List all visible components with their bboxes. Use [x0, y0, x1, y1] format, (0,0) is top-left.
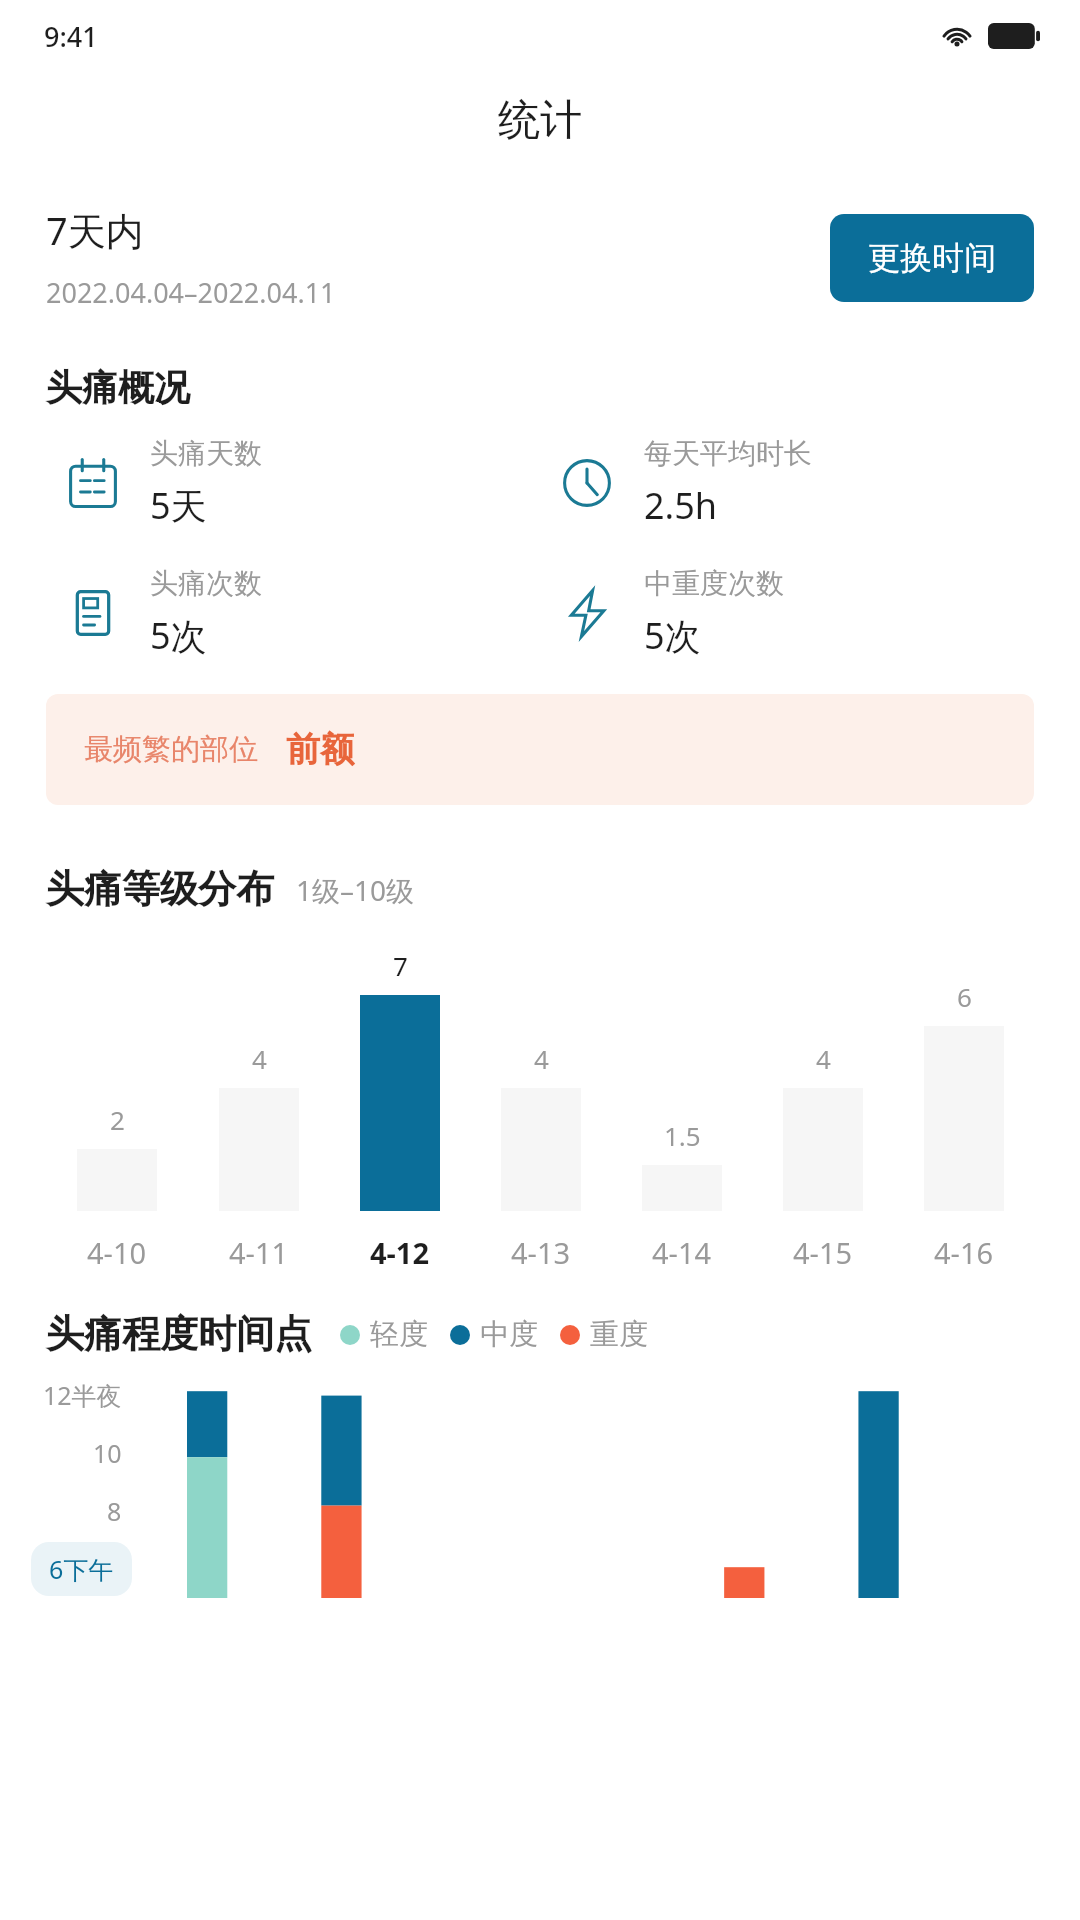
button[interactable]: 每天平均时长 — [540, 436, 1034, 530]
button[interactable]: 头痛天数 — [46, 436, 540, 530]
button[interactable]: 6 — [893, 941, 1034, 1272]
button[interactable]: 最频繁的部位 — [46, 694, 1034, 805]
staticText: 4-12 — [370, 1233, 430, 1272]
staticText: 头痛次数 — [150, 566, 262, 601]
staticText: 统计 — [498, 94, 582, 147]
staticText: 7天内 — [46, 204, 144, 256]
staticText: 5次 — [150, 611, 207, 660]
staticText: 10 — [93, 1436, 122, 1470]
staticText: 最频繁的部位 — [84, 731, 258, 768]
staticText: 2022.04.04–2022.04.11 — [46, 274, 336, 311]
staticText: 7 — [393, 948, 408, 983]
staticText: 4-15 — [793, 1233, 853, 1272]
staticText: 头痛程度时间点 — [46, 1310, 312, 1358]
button[interactable]: 中重度次数 — [540, 566, 1034, 660]
button[interactable]: 头痛次数 — [46, 566, 540, 660]
staticText: 1.5 — [664, 1118, 701, 1153]
staticText: 中重度次数 — [644, 566, 784, 601]
staticText: 9:41 — [44, 18, 98, 55]
staticText: 头痛天数 — [150, 436, 262, 471]
staticText: 6下午 — [49, 1552, 114, 1586]
button[interactable]: 4 — [752, 941, 893, 1272]
staticText: 4-11 — [229, 1233, 289, 1272]
staticText: 4-16 — [934, 1233, 994, 1272]
staticText: 4-13 — [511, 1233, 571, 1272]
staticText: 1级–10级 — [296, 871, 415, 909]
button[interactable]: 4 — [470, 941, 611, 1272]
staticText: 4-14 — [652, 1233, 712, 1272]
staticText: 5次 — [644, 611, 701, 660]
staticText: 2 — [110, 1102, 125, 1137]
button[interactable]: 4 — [188, 941, 329, 1272]
staticText: 头痛等级分布 — [46, 865, 274, 913]
staticText: 2.5h — [644, 481, 718, 530]
staticText: 8 — [107, 1494, 122, 1528]
staticText: 中度 — [480, 1316, 538, 1353]
staticText: 4 — [252, 1041, 267, 1076]
staticText: 前额 — [286, 728, 354, 771]
staticText: 4 — [816, 1041, 831, 1076]
staticText: 4 — [534, 1041, 549, 1076]
staticText: 轻度 — [370, 1316, 428, 1353]
staticText: 重度 — [590, 1316, 648, 1353]
staticText: 4-10 — [87, 1233, 147, 1272]
staticText: 6 — [957, 979, 972, 1014]
button[interactable]: 更换时间 — [830, 214, 1034, 302]
staticText: 5天 — [150, 481, 207, 530]
staticText: 头痛概况 — [46, 365, 190, 410]
staticText: 每天平均时长 — [644, 436, 812, 471]
staticText: 12半夜 — [43, 1378, 122, 1412]
button[interactable]: 2 — [46, 941, 188, 1272]
staticText: 更换时间 — [868, 238, 996, 278]
button[interactable]: 1.5 — [611, 941, 752, 1272]
button[interactable]: 7 — [329, 941, 470, 1272]
